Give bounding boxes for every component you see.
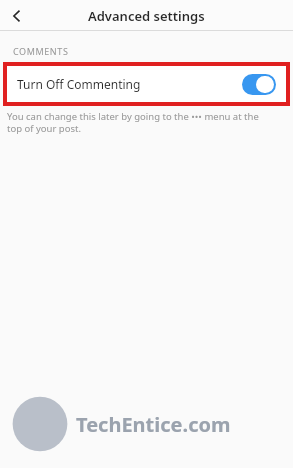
staticText: TechEntice.com <box>76 411 231 438</box>
staticText: COMMENTS <box>13 45 69 57</box>
staticText: Advanced settings <box>88 7 205 25</box>
staticText: You can change this later by going to th… <box>7 110 273 135</box>
button[interactable]: Turn Off Commenting <box>7 66 286 102</box>
staticText: Turn Off Commenting <box>17 76 141 92</box>
button[interactable]: Turn Off Commenting toggle <box>242 74 276 95</box>
button[interactable]: Back <box>0 0 34 31</box>
